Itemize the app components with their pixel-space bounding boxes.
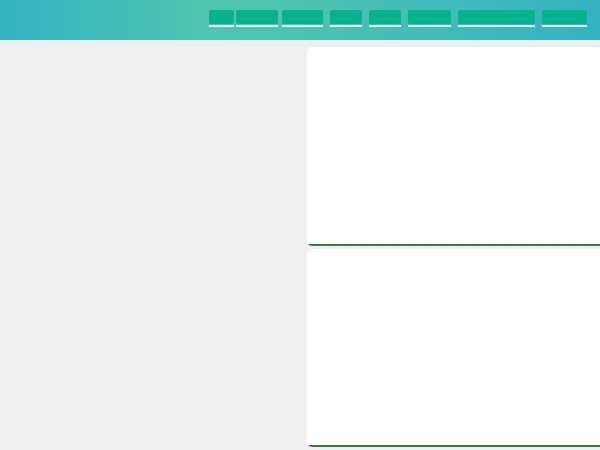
button[interactable]: Account [408, 10, 451, 27]
button[interactable]: Trips [330, 10, 362, 27]
button[interactable]: Profile [542, 10, 587, 27]
button[interactable]: Second article [307, 249, 600, 447]
button[interactable]: Notifications [458, 10, 535, 27]
button[interactable]: First article [307, 47, 600, 246]
button[interactable]: Library [282, 10, 323, 27]
button[interactable]: Deals [369, 10, 401, 27]
button[interactable]: Home [209, 10, 234, 27]
button[interactable]: Explore [236, 10, 278, 27]
